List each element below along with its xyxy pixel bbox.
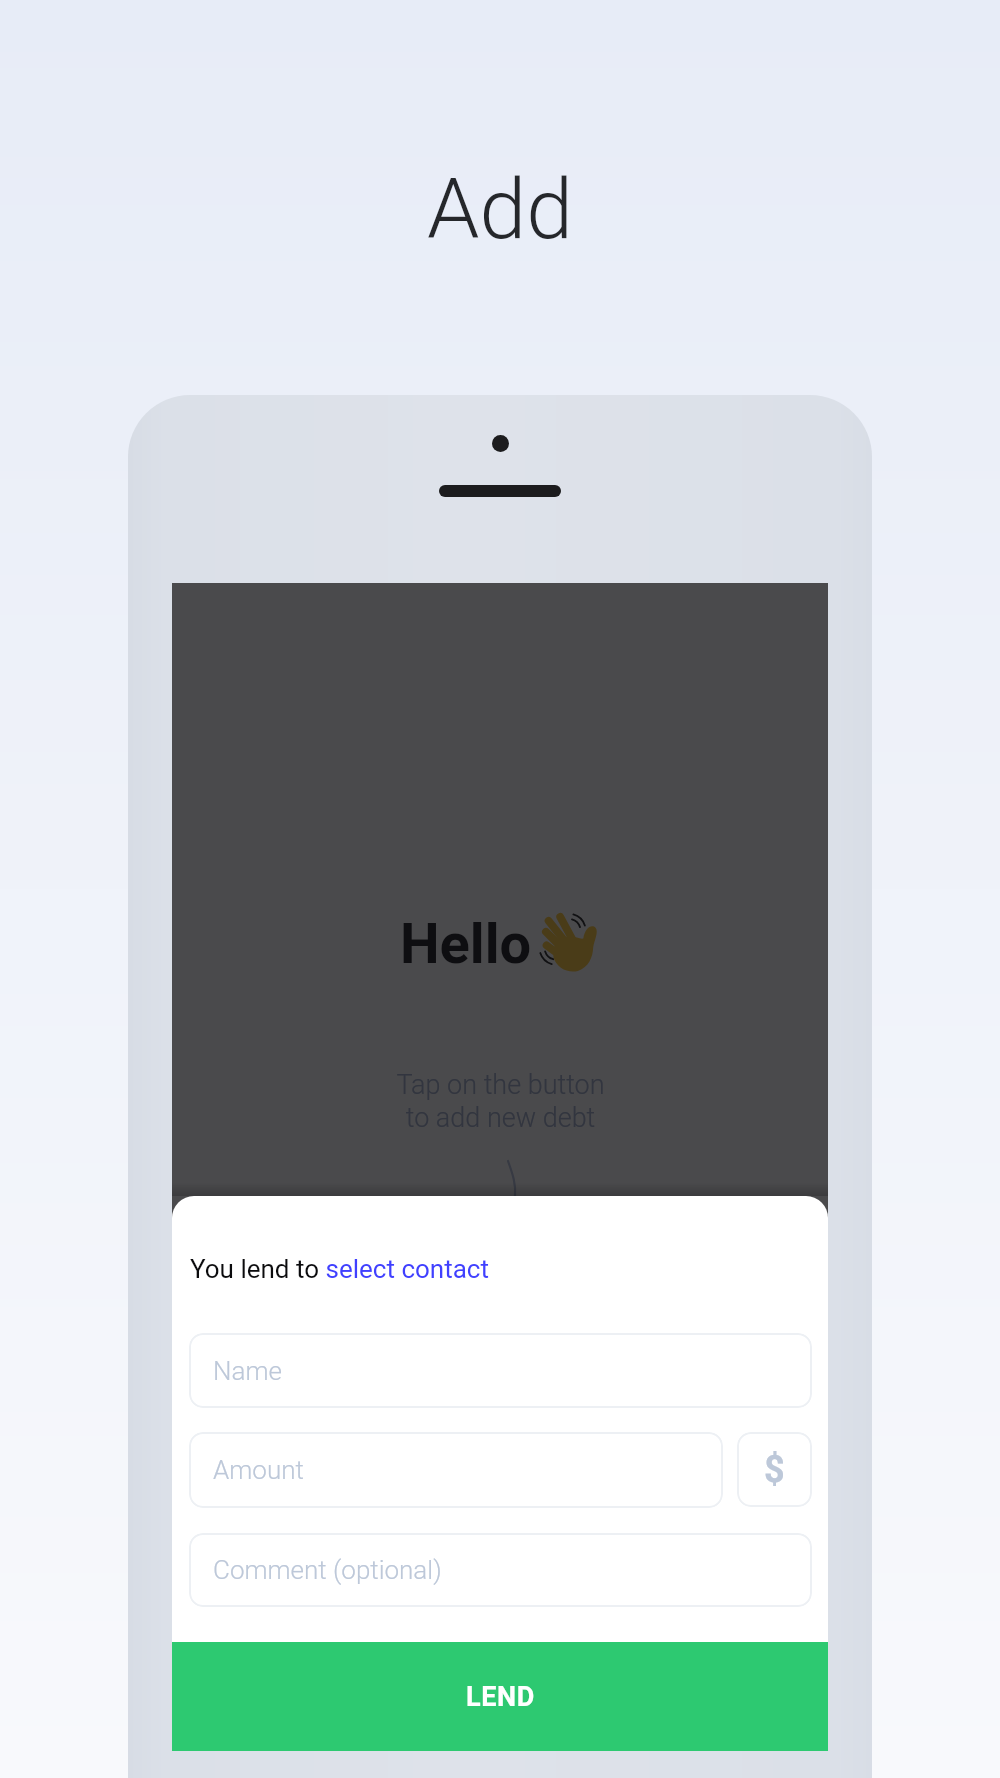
button[interactable]: Comment (optional)	[189, 1533, 812, 1607]
staticText: Comment (optional)	[213, 1555, 442, 1585]
button[interactable]: Name	[189, 1333, 812, 1408]
staticText: LEND	[466, 1681, 535, 1713]
staticText: Add	[427, 160, 573, 258]
staticText: Amount	[213, 1455, 304, 1485]
staticText: Hello	[400, 911, 532, 977]
staticText: $	[764, 1449, 785, 1491]
button[interactable]: You lend to select contact	[190, 1254, 489, 1284]
button[interactable]: Amount	[189, 1432, 723, 1508]
staticText: Name	[213, 1356, 282, 1386]
button[interactable]: Currency	[737, 1432, 812, 1507]
button[interactable]: LEND	[172, 1642, 828, 1751]
staticText: Tap on the button to add new debt	[396, 1069, 605, 1134]
